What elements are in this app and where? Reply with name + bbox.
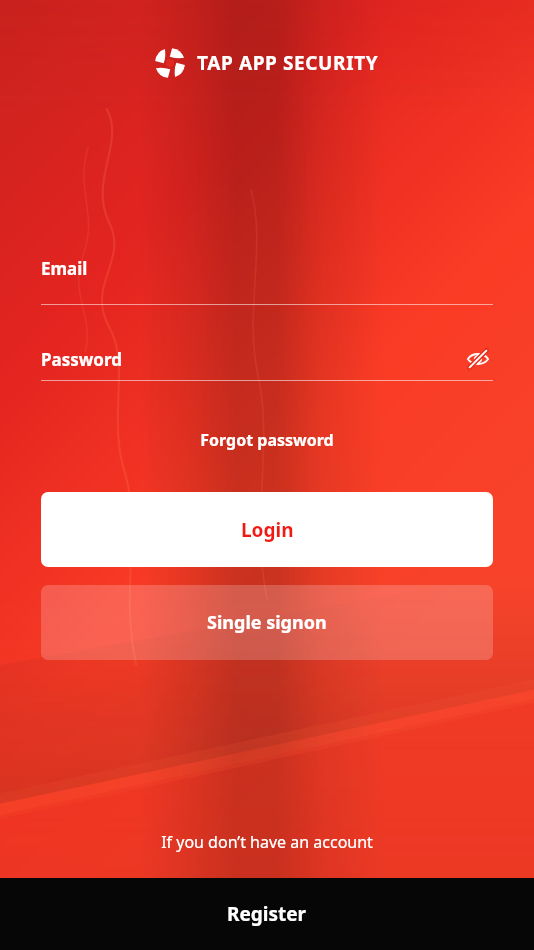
staticText: Register	[227, 901, 307, 927]
button[interactable]: Register	[0, 878, 534, 950]
staticText: Login	[241, 517, 294, 543]
button[interactable]: Forgot password	[188, 425, 346, 455]
staticText: TAP APP SECURITY	[197, 50, 379, 76]
button[interactable]: Show password	[463, 344, 493, 374]
button[interactable]: Password	[41, 348, 463, 371]
staticText: Single signon	[207, 610, 327, 635]
button[interactable]: Single signon	[41, 585, 493, 660]
button[interactable]: Login	[41, 492, 493, 567]
staticText: If you don’t have an account	[161, 831, 373, 853]
button[interactable]: Email	[41, 257, 88, 280]
